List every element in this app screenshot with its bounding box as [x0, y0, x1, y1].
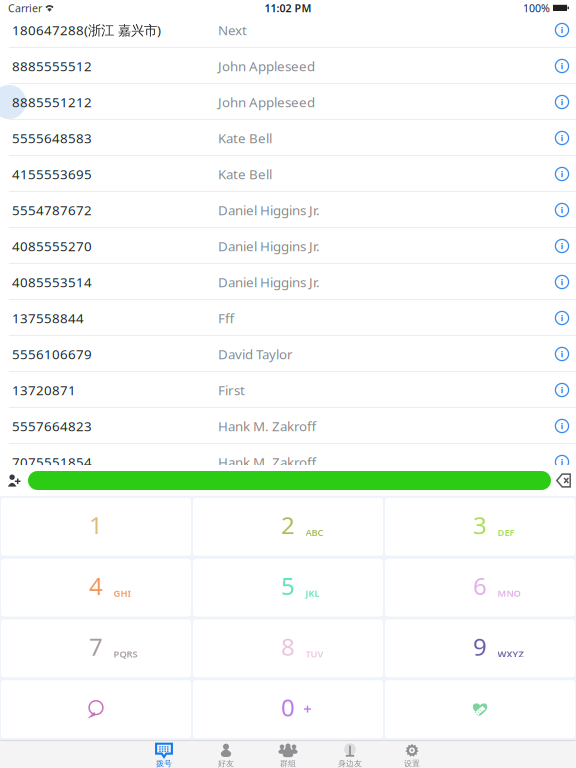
staticText: 8: [281, 630, 295, 662]
staticText: 5557664823: [12, 417, 92, 435]
button[interactable]: [1, 680, 191, 738]
button[interactable]: 4085555270: [0, 228, 576, 264]
staticText: 7: [89, 630, 103, 662]
staticText: David Taylor: [218, 345, 293, 363]
button[interactable]: 5: [193, 559, 383, 617]
staticText: GHI: [113, 587, 130, 599]
button[interactable]: 6: [385, 559, 575, 617]
staticText: Daniel Higgins Jr.: [218, 201, 320, 219]
staticText: John Appleseed: [218, 93, 315, 111]
staticText: 4: [89, 570, 103, 602]
button[interactable]: [385, 680, 575, 738]
staticText: WXYZ: [497, 648, 523, 660]
staticText: ABC: [305, 526, 323, 539]
staticText: 5555648583: [12, 129, 92, 147]
staticText: PQRS: [113, 648, 137, 660]
staticText: John Appleseed: [218, 57, 315, 75]
button[interactable]: 身边友: [319, 743, 381, 768]
staticText: 5: [281, 570, 295, 602]
staticText: Carrier: [8, 1, 42, 15]
staticText: 设置: [404, 759, 420, 768]
staticText: 6: [473, 570, 487, 602]
staticText: 7075551854: [12, 453, 92, 471]
button[interactable]: 4085553514: [0, 264, 576, 300]
button[interactable]: 7: [1, 619, 191, 677]
staticText: 9: [473, 630, 487, 662]
staticText: MNO: [497, 587, 520, 599]
staticText: Kate Bell: [218, 165, 272, 183]
staticText: 4085555270: [12, 237, 92, 255]
staticText: 群组: [280, 759, 296, 768]
button[interactable]: 3: [385, 498, 575, 556]
button[interactable]: 4155553695: [0, 156, 576, 192]
button[interactable]: 8885551212: [0, 84, 576, 120]
staticText: 好友: [218, 759, 234, 768]
staticText: 身边友: [338, 759, 362, 768]
staticText: 0: [281, 691, 295, 723]
staticText: 拨号: [156, 759, 172, 768]
staticText: Hank M. Zakroff: [218, 453, 316, 471]
staticText: First: [218, 381, 245, 399]
button[interactable]: 5556106679: [0, 336, 576, 372]
button[interactable]: 1: [1, 498, 191, 556]
button[interactable]: 5555648583: [0, 120, 576, 156]
staticText: DEF: [497, 526, 514, 539]
staticText: 13720871: [12, 381, 76, 399]
button[interactable]: 0: [193, 680, 383, 738]
staticText: 137558844: [12, 309, 84, 327]
staticText: 5554787672: [12, 201, 92, 219]
button[interactable]: Add Contact: [0, 465, 28, 496]
staticText: 100%: [523, 1, 550, 15]
button[interactable]: 4: [1, 559, 191, 617]
button[interactable]: Number field: [28, 471, 551, 490]
staticText: 4155553695: [12, 165, 92, 183]
staticText: 3: [473, 509, 487, 541]
staticText: 8885551212: [12, 93, 92, 111]
staticText: Daniel Higgins Jr.: [218, 237, 320, 255]
button[interactable]: 180647288(浙江 嘉兴市): [0, 12, 576, 48]
staticText: 1: [89, 509, 103, 541]
staticText: 180647288(浙江 嘉兴市): [12, 21, 161, 39]
button[interactable]: 设置: [381, 743, 443, 768]
staticText: Fff: [218, 309, 234, 327]
button[interactable]: 群组: [257, 743, 319, 768]
button[interactable]: 9: [385, 619, 575, 677]
staticText: JKL: [305, 587, 319, 599]
staticText: 5556106679: [12, 345, 92, 363]
button[interactable]: 137558844: [0, 300, 576, 336]
button[interactable]: 13720871: [0, 372, 576, 408]
button[interactable]: 5557664823: [0, 408, 576, 444]
button[interactable]: 2: [193, 498, 383, 556]
staticText: Daniel Higgins Jr.: [218, 273, 320, 291]
button[interactable]: 拨号: [133, 743, 195, 768]
button[interactable]: 8885555512: [0, 48, 576, 84]
staticText: TUV: [305, 648, 323, 660]
button[interactable]: Delete: [551, 465, 576, 496]
staticText: Next: [218, 21, 247, 39]
staticText: 2: [281, 509, 295, 541]
staticText: 11:02 PM: [264, 1, 311, 15]
button[interactable]: 8: [193, 619, 383, 677]
staticText: 4085553514: [12, 273, 92, 291]
staticText: Hank M. Zakroff: [218, 417, 316, 435]
button[interactable]: 好友: [195, 743, 257, 768]
staticText: 8885555512: [12, 57, 92, 75]
button[interactable]: 7075551854: [0, 444, 576, 480]
staticText: Kate Bell: [218, 129, 272, 147]
button[interactable]: 5554787672: [0, 192, 576, 228]
